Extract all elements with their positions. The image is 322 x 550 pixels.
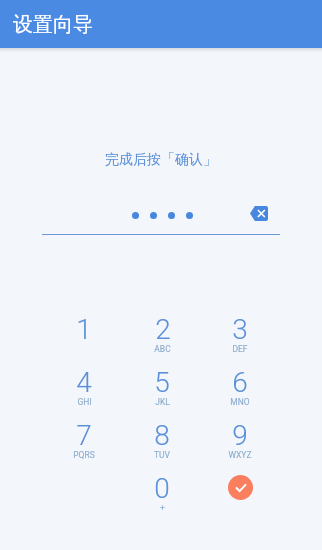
button[interactable]: 3 xyxy=(208,313,272,361)
staticText: 设置向导 xyxy=(13,12,93,37)
staticText: TUV xyxy=(154,450,170,460)
staticText: PQRS xyxy=(73,450,95,460)
staticText: 9 xyxy=(232,419,248,452)
button[interactable]: 6 xyxy=(208,366,272,414)
staticText: JKL xyxy=(155,397,170,407)
button[interactable]: 7 xyxy=(52,419,116,467)
staticText: 7 xyxy=(76,419,92,452)
staticText: DEF xyxy=(232,344,248,354)
staticText: MNO xyxy=(230,397,250,407)
staticText: 完成后按「确认」 xyxy=(105,151,217,169)
button[interactable]: 0 xyxy=(130,472,194,520)
staticText: ABC xyxy=(154,344,171,354)
button[interactable]: 9 xyxy=(208,419,272,467)
staticText: 0 xyxy=(154,472,170,505)
button[interactable]: 8 xyxy=(130,419,194,467)
button[interactable]: 设置向导 xyxy=(0,0,322,48)
button[interactable]: 4 xyxy=(52,366,116,414)
staticText: WXYZ xyxy=(228,450,252,460)
button[interactable]: 1 xyxy=(52,313,116,361)
staticText: 3 xyxy=(232,313,248,346)
staticText: 1 xyxy=(76,313,92,346)
staticText: 4 xyxy=(76,366,92,399)
staticText: + xyxy=(160,503,165,513)
button[interactable]: Confirm xyxy=(228,475,253,500)
staticText: 5 xyxy=(154,366,170,399)
staticText: 8 xyxy=(154,419,170,452)
button[interactable]: 5 xyxy=(130,366,194,414)
button[interactable]: Backspace xyxy=(250,206,268,221)
button[interactable]: 2 xyxy=(130,313,194,361)
staticText: GHI xyxy=(77,397,92,407)
staticText: 6 xyxy=(232,366,248,399)
staticText: 2 xyxy=(155,313,171,346)
